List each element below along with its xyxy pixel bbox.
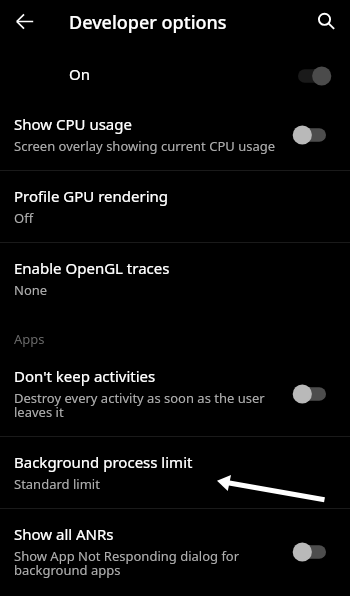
button[interactable]: Back	[7, 6, 43, 42]
staticText: Destroy every activity as soon as the us…	[14, 389, 280, 421]
button[interactable]: Search	[306, 6, 342, 42]
staticText: Standard limit	[14, 475, 100, 493]
staticText: Enable OpenGL traces	[14, 258, 170, 278]
button[interactable]: Profile GPU rendering	[0, 171, 350, 242]
staticText: On	[69, 64, 292, 84]
button[interactable]: Show CPU usage	[0, 99, 350, 170]
button[interactable]: Don't keep activities	[0, 351, 350, 436]
button[interactable]: Enable OpenGL traces	[0, 243, 350, 314]
staticText: Developer options	[69, 10, 227, 35]
staticText: Off	[14, 209, 34, 227]
staticText: Background process limit	[14, 452, 193, 472]
staticText: Profile GPU rendering	[14, 186, 169, 206]
staticText: Apps	[14, 330, 45, 348]
staticText: Don't keep activities	[14, 366, 156, 386]
staticText: Show all ANRs	[14, 524, 114, 544]
staticText: Show CPU usage	[14, 114, 132, 134]
button[interactable]: Show all ANRs	[0, 509, 350, 594]
staticText: Screen overlay showing current CPU usage	[14, 137, 276, 155]
button[interactable]: Background process limit	[0, 437, 350, 508]
button[interactable]: On	[0, 48, 350, 99]
staticText: Show App Not Responding dialog for backg…	[14, 547, 280, 579]
staticText: None	[14, 281, 48, 299]
